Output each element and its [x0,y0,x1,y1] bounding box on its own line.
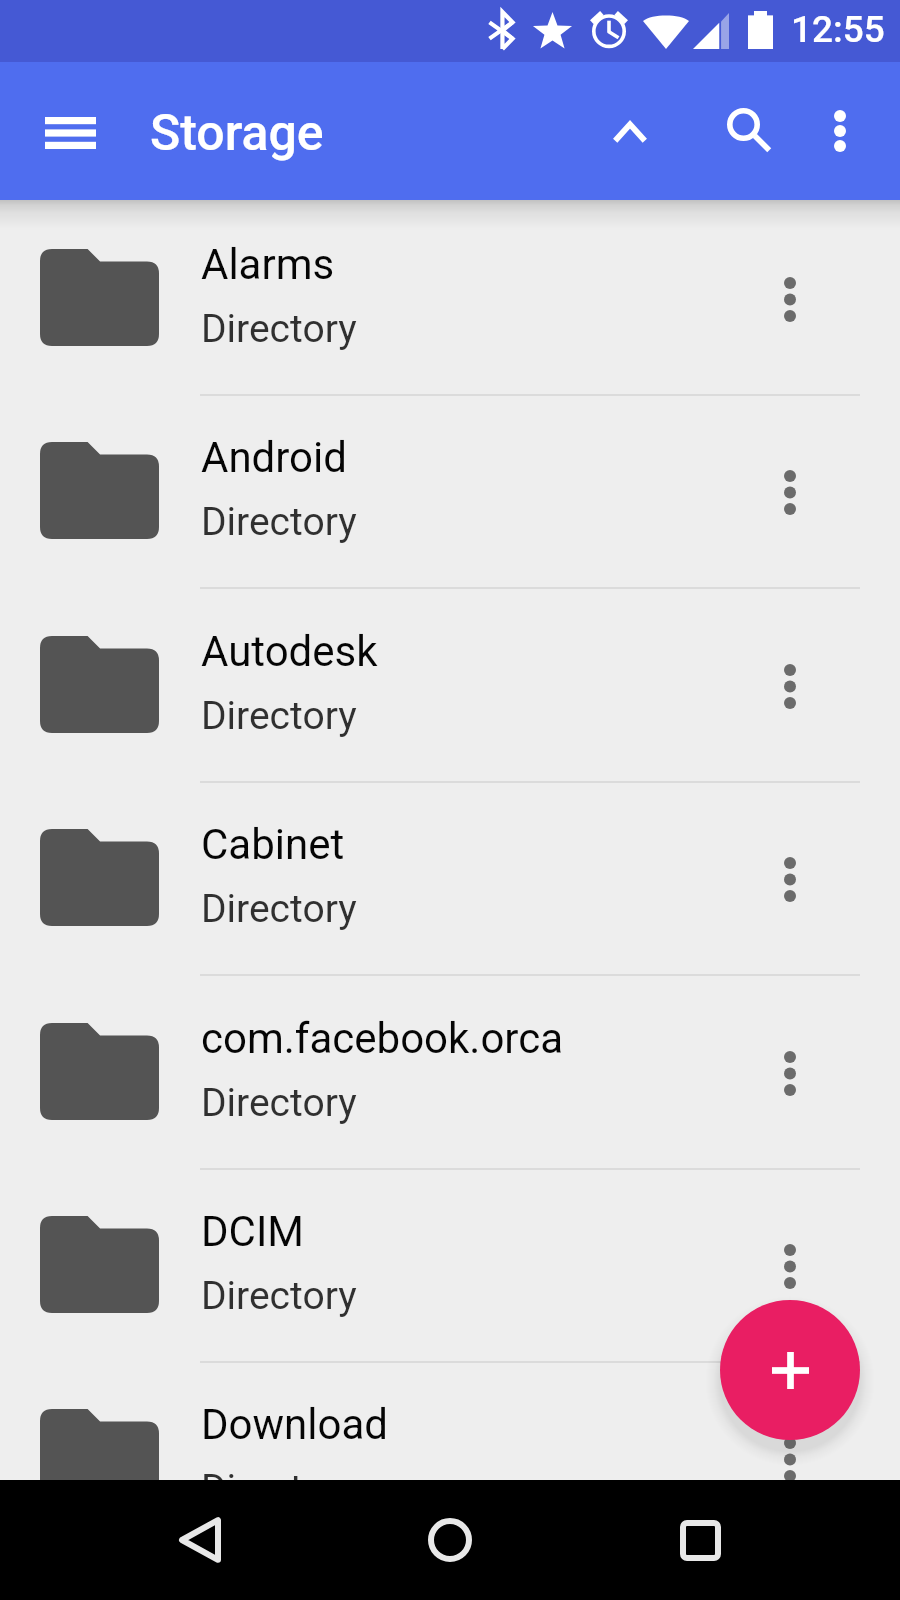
staticText: Directory [201,693,357,739]
staticText: DCIM [201,1207,304,1256]
button[interactable]: Home [390,1480,510,1600]
staticText: Android [201,433,347,482]
button[interactable]: More options [742,1170,838,1363]
button[interactable]: Navigation menu [22,62,118,200]
button[interactable]: Back [140,1480,260,1600]
button[interactable]: More options [742,590,838,783]
button[interactable]: More options [742,203,838,396]
staticText: Alarms [201,240,335,289]
button[interactable]: More options [742,783,838,976]
button[interactable]: Download [0,1363,900,1483]
staticText: Directory [201,499,357,545]
staticText: Directory [201,1273,357,1319]
button[interactable]: Collapse [582,62,678,200]
button[interactable]: DCIM [0,1170,900,1363]
button[interactable]: Autodesk [0,590,900,783]
button[interactable]: More options [792,62,888,200]
staticText: 12:55 [791,8,885,51]
staticText: Directory [201,306,357,352]
staticText: com.facebook.orca [201,1014,564,1063]
button[interactable]: Android [0,396,900,589]
staticText: Directory [201,886,357,932]
button[interactable]: com.facebook.orca [0,977,900,1170]
button[interactable]: More options [742,977,838,1170]
button[interactable]: More options [742,396,838,589]
staticText: Directory [201,1466,357,1483]
staticText: Directory [201,1080,357,1126]
button[interactable]: Recent apps [640,1480,760,1600]
staticText: Download [201,1400,388,1449]
button[interactable]: Alarms [0,203,900,396]
staticText: Cabinet [201,820,345,869]
staticText: Storage [150,104,324,163]
button[interactable]: Add [720,1300,860,1440]
button[interactable]: Cabinet [0,783,900,976]
staticText: Autodesk [201,627,378,676]
button[interactable]: Search [695,62,791,200]
button[interactable]: More options [742,1363,838,1483]
